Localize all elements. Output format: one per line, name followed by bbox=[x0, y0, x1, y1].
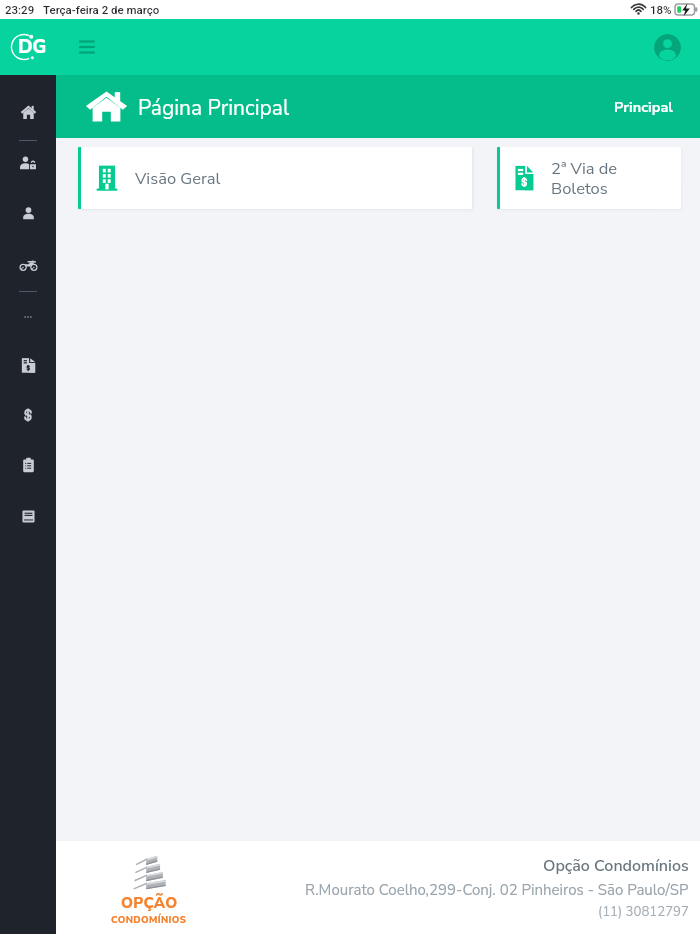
button[interactable]: Account bbox=[645, 25, 689, 69]
staticText: (11) 30812797 bbox=[598, 903, 689, 921]
staticText: R.Mourato Coelho,299-Conj. 02 Pinheiros … bbox=[305, 880, 689, 900]
button[interactable]: Invoices bbox=[0, 346, 56, 384]
staticText: Visão Geral bbox=[135, 167, 221, 190]
staticText: CONDOMÍNIOS bbox=[111, 913, 187, 926]
button[interactable]: Documents bbox=[0, 497, 56, 535]
staticText: 23:29 bbox=[5, 3, 35, 16]
button[interactable]: Users and permissions bbox=[0, 144, 56, 182]
staticText: Principal bbox=[614, 97, 673, 117]
button[interactable]: More options bbox=[0, 298, 56, 336]
button[interactable]: Menu bbox=[67, 27, 107, 67]
staticText: OPÇÃO bbox=[121, 893, 178, 913]
staticText: 18% bbox=[650, 3, 672, 16]
staticText: 2ª Via de Boletos bbox=[551, 157, 618, 200]
button[interactable]: Vehicles bbox=[0, 245, 56, 283]
button[interactable]: Visão Geral bbox=[78, 147, 472, 209]
staticText: DG bbox=[18, 34, 46, 60]
button[interactable]: Profile bbox=[0, 194, 56, 232]
button[interactable]: Reports bbox=[0, 446, 56, 484]
staticText: Terça-feira 2 de março bbox=[43, 3, 160, 16]
button[interactable]: DG logo bbox=[6, 25, 50, 69]
staticText: Opção Condomínios bbox=[543, 855, 689, 877]
button[interactable]: 2ª Via de Boletos bbox=[497, 147, 681, 209]
staticText: Página Principal bbox=[138, 94, 290, 123]
button[interactable]: Finance bbox=[0, 396, 56, 434]
button[interactable]: Home bbox=[0, 93, 56, 131]
